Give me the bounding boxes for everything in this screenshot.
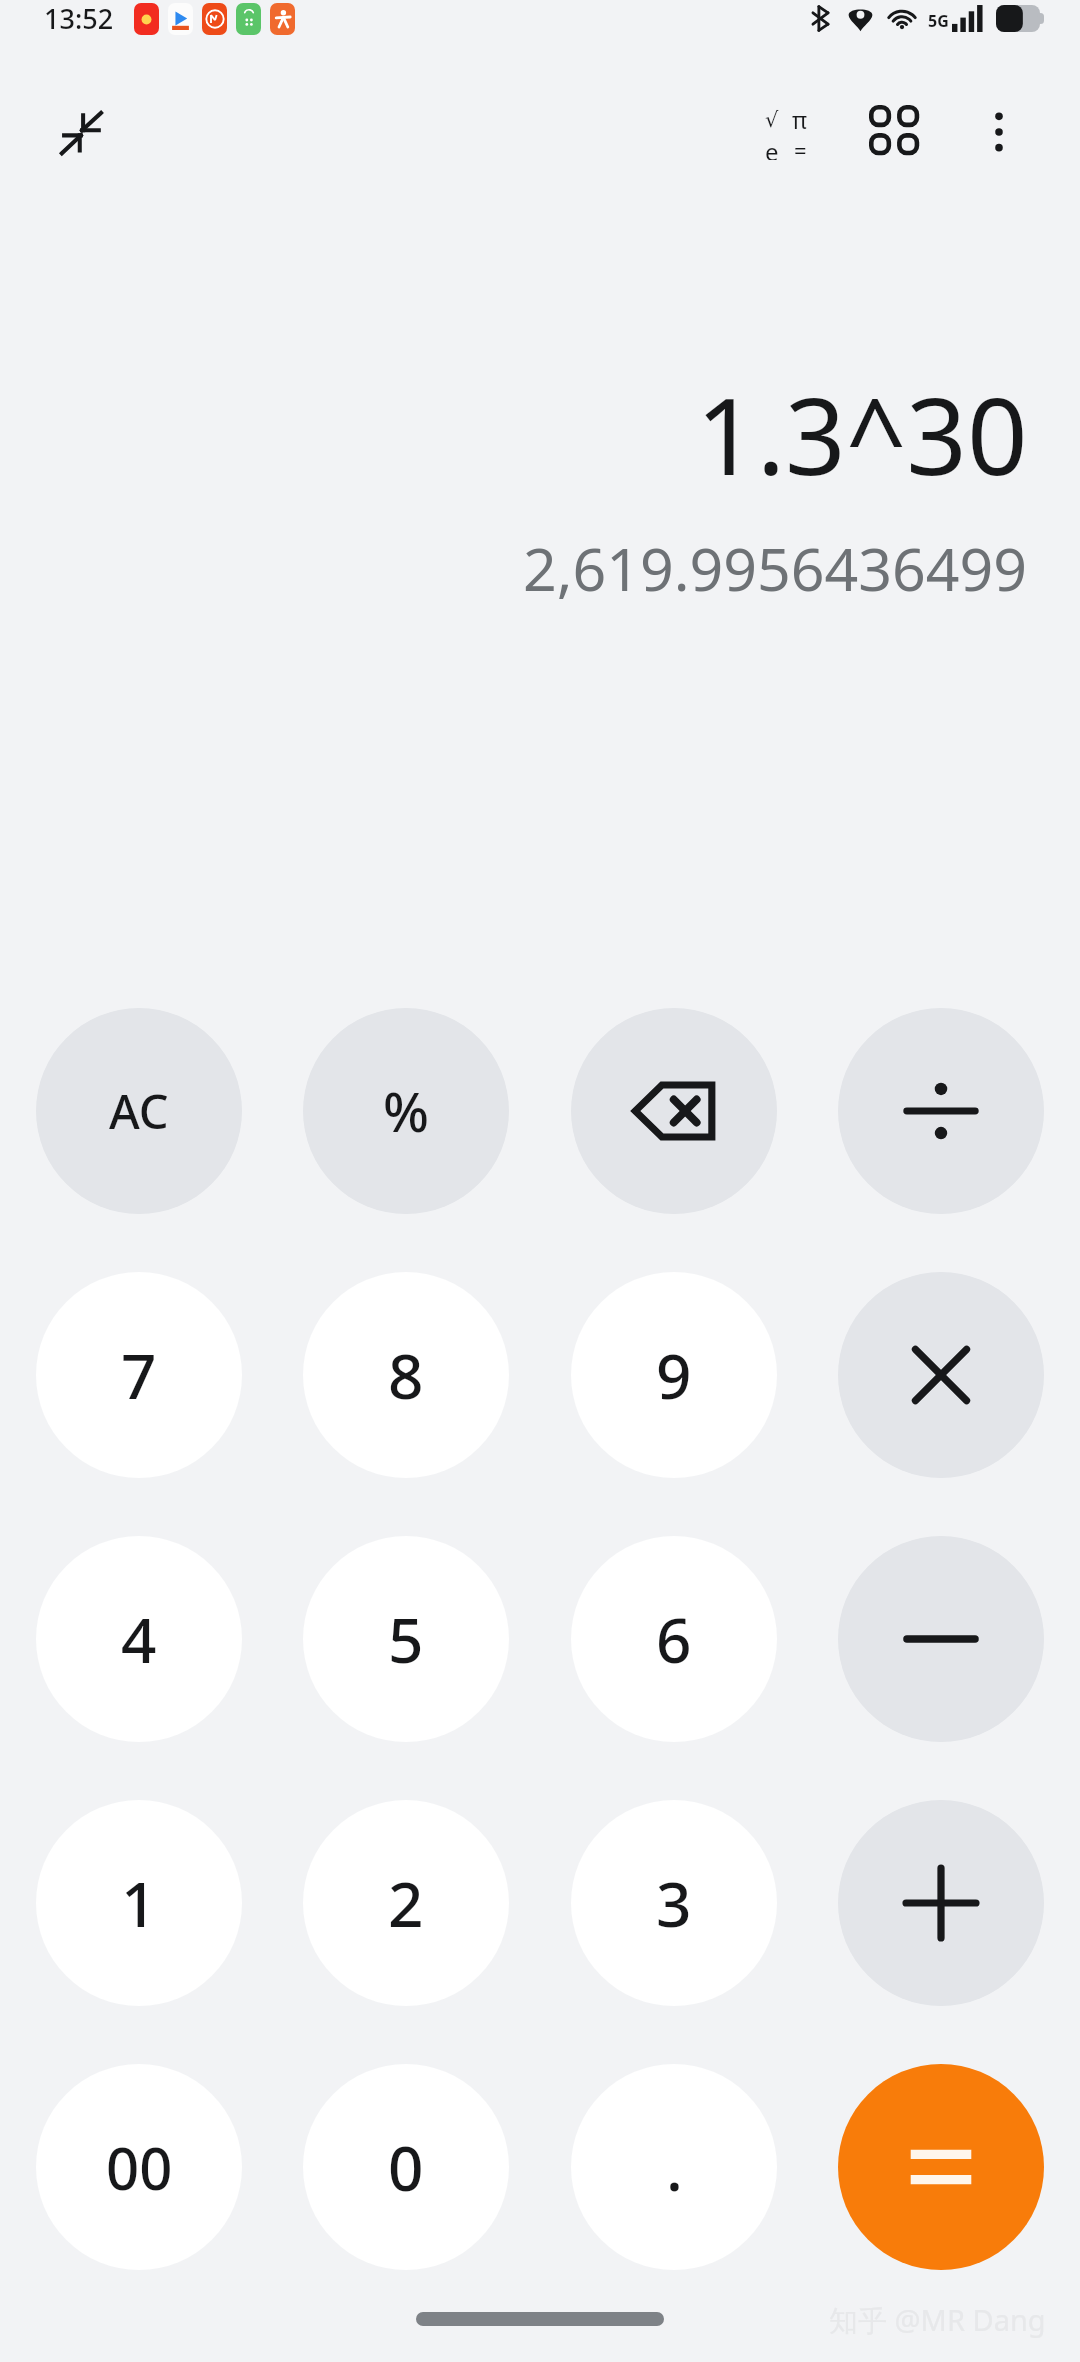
button[interactable]: Equals bbox=[838, 2064, 1044, 2270]
button[interactable]: . bbox=[571, 2064, 777, 2270]
staticText: π bbox=[792, 104, 808, 135]
staticText: 1 bbox=[121, 1861, 157, 1945]
staticText: 4 bbox=[121, 1597, 157, 1681]
button[interactable]: 1 bbox=[36, 1800, 242, 2006]
staticText: 5 bbox=[388, 1597, 424, 1681]
button[interactable]: Collapse bbox=[42, 92, 122, 172]
staticText: √ bbox=[765, 108, 779, 132]
button[interactable]: Minus bbox=[838, 1536, 1044, 1742]
button[interactable]: 9 bbox=[571, 1272, 777, 1478]
button[interactable]: Multiply bbox=[838, 1272, 1044, 1478]
staticText: 13:52 bbox=[44, 0, 114, 37]
staticText: 7 bbox=[121, 1333, 157, 1417]
button[interactable]: Backspace bbox=[571, 1008, 777, 1214]
button[interactable]: Keypad layout bbox=[854, 90, 938, 174]
staticText: 3 bbox=[656, 1861, 692, 1945]
button[interactable]: 8 bbox=[303, 1272, 509, 1478]
button[interactable]: Scientific mode bbox=[744, 90, 828, 174]
staticText: 00 bbox=[106, 2128, 173, 2207]
button[interactable]: More options bbox=[960, 93, 1038, 171]
staticText: 1.3^30 bbox=[696, 362, 1028, 506]
staticText: . bbox=[666, 2125, 683, 2209]
button[interactable]: 0 bbox=[303, 2064, 509, 2270]
button[interactable]: 6 bbox=[571, 1536, 777, 1742]
staticText: 2 bbox=[388, 1861, 424, 1945]
staticText: % bbox=[383, 1074, 430, 1148]
staticText: 5G bbox=[928, 10, 949, 32]
staticText: 6 bbox=[656, 1597, 692, 1681]
staticText: = bbox=[794, 135, 807, 160]
button[interactable]: Divide bbox=[838, 1008, 1044, 1214]
button[interactable]: 00 bbox=[36, 2064, 242, 2270]
button[interactable]: 3 bbox=[571, 1800, 777, 2006]
button[interactable]: % bbox=[303, 1008, 509, 1214]
staticText: 8 bbox=[388, 1333, 424, 1417]
button[interactable]: 2 bbox=[303, 1800, 509, 2006]
button[interactable]: 7 bbox=[36, 1272, 242, 1478]
staticText: 2,619.9956436499 bbox=[523, 528, 1028, 608]
staticText: 9 bbox=[656, 1333, 692, 1417]
staticText: 0 bbox=[388, 2125, 424, 2209]
button[interactable]: Plus bbox=[838, 1800, 1044, 2006]
button[interactable]: 5 bbox=[303, 1536, 509, 1742]
button[interactable]: AC bbox=[36, 1008, 242, 1214]
staticText: e bbox=[765, 135, 779, 160]
button[interactable]: 4 bbox=[36, 1536, 242, 1742]
staticText: 知乎 @MR Dang bbox=[829, 2300, 1046, 2340]
staticText: AC bbox=[109, 1079, 169, 1143]
